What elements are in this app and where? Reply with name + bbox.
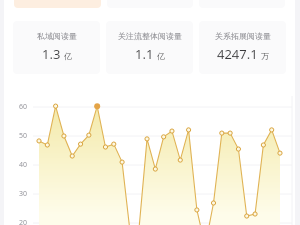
staticText: 亿 (64, 51, 72, 61)
staticText: 万 (261, 51, 269, 61)
staticText: 30 (18, 189, 27, 199)
button[interactable]: 关系拓展阅读量 (199, 21, 286, 74)
staticText: 20 (18, 218, 27, 225)
button[interactable]: 关注流整体阅读量 (106, 21, 193, 74)
staticText: 4247.1 (217, 45, 258, 63)
staticText: 私域阅读量 (37, 31, 77, 41)
button[interactable]: 私域阅读量 (13, 21, 100, 74)
staticText: 1.1 (135, 45, 154, 63)
staticText: 50 (18, 131, 27, 141)
staticText: 亿 (157, 51, 165, 61)
staticText: 1.3 (42, 45, 61, 63)
staticText: 关注流整体阅读量 (118, 31, 182, 41)
staticText: 60 (18, 102, 27, 112)
staticText: 40 (18, 160, 27, 170)
staticText: 关系拓展阅读量 (215, 31, 271, 41)
